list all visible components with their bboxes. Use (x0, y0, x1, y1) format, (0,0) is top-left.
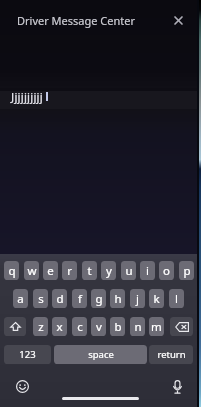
button[interactable]: space (54, 345, 147, 364)
staticText: d (56, 291, 64, 307)
button[interactable]: v (91, 317, 106, 336)
button[interactable]: s (33, 289, 48, 308)
button[interactable]: y (101, 261, 116, 280)
staticText: Driver Message Center (17, 13, 135, 28)
button[interactable]: Emoji keyboard (13, 377, 32, 396)
button[interactable]: j (130, 289, 145, 308)
button[interactable]: Jjjjjjjjjj (0, 91, 197, 109)
staticText: x (56, 319, 63, 335)
staticText: r (67, 263, 72, 279)
staticText: w (27, 263, 37, 279)
staticText: 123 (19, 348, 36, 361)
button[interactable]: i (140, 261, 155, 280)
button[interactable]: u (121, 261, 136, 280)
button[interactable]: k (149, 289, 164, 308)
button[interactable]: a (13, 289, 28, 308)
button[interactable]: Dictation (168, 377, 187, 396)
staticText: u (125, 263, 133, 279)
button[interactable]: p (179, 261, 194, 280)
staticText: i (146, 263, 149, 279)
button[interactable]: g (91, 289, 106, 308)
button[interactable]: l (169, 289, 184, 308)
button[interactable]: Backspace (170, 317, 193, 336)
button[interactable]: q (4, 261, 19, 280)
button[interactable]: t (82, 261, 97, 280)
staticText: p (183, 263, 191, 279)
button[interactable]: d (52, 289, 67, 308)
button[interactable]: n (130, 317, 145, 336)
button[interactable]: e (43, 261, 58, 280)
button[interactable]: w (24, 261, 39, 280)
staticText: a (17, 291, 24, 307)
staticText: l (175, 291, 178, 307)
staticText: q (8, 263, 16, 279)
staticText: v (96, 319, 102, 335)
staticText: g (95, 291, 103, 307)
button[interactable]: h (110, 289, 125, 308)
staticText: o (163, 263, 170, 279)
button[interactable]: o (159, 261, 174, 280)
staticText: e (47, 263, 54, 279)
staticText: space (88, 348, 114, 361)
button[interactable]: b (110, 317, 125, 336)
staticText: z (38, 319, 44, 335)
staticText: j (136, 291, 139, 307)
button[interactable]: f (72, 289, 87, 308)
staticText: Jjjjjjjjjj (11, 89, 43, 104)
staticText: k (153, 291, 160, 307)
staticText: h (114, 291, 122, 307)
button[interactable]: r (62, 261, 77, 280)
staticText: s (38, 291, 44, 307)
staticText: b (114, 319, 122, 335)
button[interactable]: m (149, 317, 164, 336)
staticText: t (87, 263, 92, 279)
button[interactable]: c (72, 317, 87, 336)
staticText: y (106, 263, 112, 279)
staticText: f (78, 291, 82, 307)
staticText: return (157, 348, 186, 361)
staticText: c (77, 319, 83, 335)
button[interactable]: z (33, 317, 48, 336)
button[interactable]: return (149, 345, 193, 364)
button[interactable]: 123 (4, 345, 51, 364)
staticText: n (134, 319, 142, 335)
button[interactable]: Close (167, 9, 190, 32)
staticText: m (151, 319, 162, 335)
button[interactable]: Shift (4, 317, 26, 336)
button[interactable]: x (52, 317, 67, 336)
